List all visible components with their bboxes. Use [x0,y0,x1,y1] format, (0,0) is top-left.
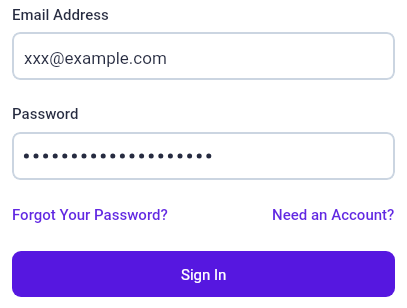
staticText: Sign In [181,266,227,284]
staticText: xxx@example.com [24,48,167,68]
button[interactable]: Forgot Your Password? [12,206,168,224]
staticText: Email Address [12,6,109,24]
button[interactable]: Sign In [12,251,395,297]
button[interactable]: Need an Account? [272,206,395,224]
staticText: Password [12,105,79,123]
button[interactable] [12,32,395,80]
button[interactable] [12,132,395,180]
